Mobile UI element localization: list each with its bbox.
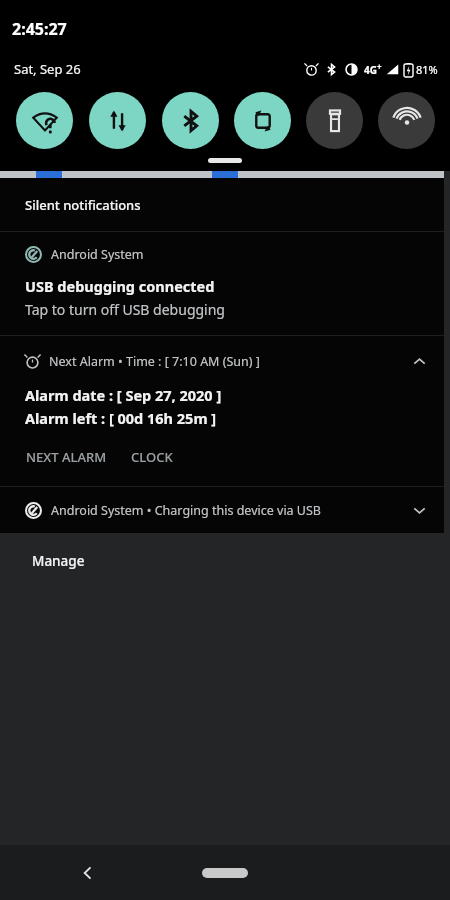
button[interactable]: Silent notifications: [0, 178, 444, 231]
staticText: Android System: [51, 246, 144, 263]
staticText: Silent notifications: [25, 196, 141, 214]
button[interactable]: Collapse: [408, 350, 430, 372]
button[interactable]: Auto rotate: [234, 92, 291, 149]
staticText: Android System • Charging this device vi…: [51, 502, 321, 519]
staticText: NEXT ALARM: [26, 448, 107, 466]
button[interactable]: Manage: [26, 548, 91, 574]
staticText: 4G: [364, 63, 377, 77]
button[interactable]: CLOCK: [125, 444, 179, 470]
button[interactable]: Wi-Fi: [16, 92, 73, 149]
button[interactable]: Android System • Charging this device vi…: [0, 487, 444, 533]
button[interactable]: Back: [70, 855, 106, 891]
staticText: Sat, Sep 26: [14, 60, 81, 78]
button[interactable]: Hotspot: [378, 92, 435, 149]
button[interactable]: Expand: [408, 499, 430, 521]
button[interactable]: Bluetooth: [162, 92, 219, 149]
button[interactable]: Flashlight: [306, 92, 363, 149]
staticText: 2:45:27: [12, 18, 67, 40]
staticText: 81%: [416, 62, 438, 77]
staticText: Alarm date : [ Sep 27, 2020 ]: [25, 385, 222, 405]
button[interactable]: Next Alarm • Time : [ 7:10 AM (Sun) ]: [0, 336, 444, 486]
staticText: Alarm left : [ 00d 16h 25m ]: [25, 408, 217, 428]
staticText: Tap to turn off USB debugging: [25, 300, 225, 319]
staticText: USB debugging connected: [25, 276, 215, 296]
staticText: Manage: [32, 552, 85, 570]
button[interactable]: Android System: [0, 232, 444, 335]
button[interactable]: Home: [197, 858, 253, 888]
staticText: +: [377, 61, 382, 72]
staticText: CLOCK: [131, 448, 173, 466]
button[interactable]: Mobile data: [89, 92, 146, 149]
button[interactable]: NEXT ALARM: [20, 444, 113, 470]
staticText: Next Alarm • Time : [ 7:10 AM (Sun) ]: [49, 353, 260, 370]
